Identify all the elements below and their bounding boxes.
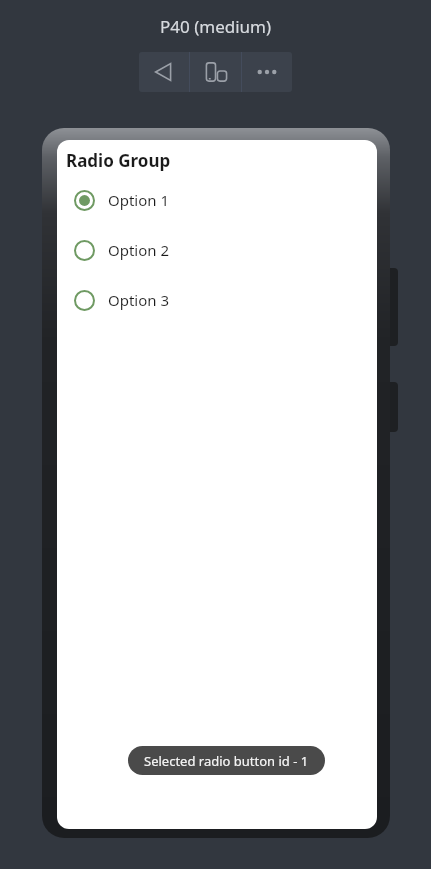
staticText: P40 (medium)	[160, 15, 272, 38]
staticText: Option 1	[108, 190, 170, 210]
button[interactable]: Previous	[139, 52, 189, 92]
button[interactable]: Option 2	[66, 232, 170, 268]
button[interactable]: Option 3	[66, 282, 170, 318]
button[interactable]: Selected radio button id - 1	[128, 746, 325, 775]
button[interactable]: More options	[242, 52, 292, 92]
staticText: Selected radio button id - 1	[144, 752, 309, 770]
staticText: Option 2	[108, 240, 170, 260]
button[interactable]: Device layout	[190, 52, 241, 92]
staticText: Radio Group	[66, 149, 171, 172]
staticText: Option 3	[108, 290, 170, 310]
button[interactable]: Option 1	[66, 182, 170, 218]
